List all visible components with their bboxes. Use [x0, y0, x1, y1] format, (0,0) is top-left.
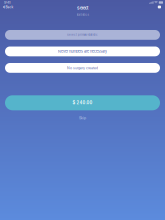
button[interactable]: Info: [156, 4, 163, 10]
staticText: Select primary statistic: [67, 33, 98, 36]
staticText: Select: [77, 6, 88, 10]
staticText: 9:41: [4, 0, 11, 5]
staticText: statistics: [76, 13, 88, 16]
button[interactable]: Never numbers are necessary: [5, 46, 160, 56]
button[interactable]: Select primary statistic: [5, 30, 160, 40]
staticText: Back: [5, 5, 13, 9]
staticText: $ 240.00: [72, 100, 92, 105]
button[interactable]: Skip: [77, 114, 87, 121]
staticText: No surgery created: [67, 66, 98, 70]
staticText: Skip: [79, 116, 86, 120]
button[interactable]: No surgery created: [5, 63, 160, 73]
button[interactable]: $ 240.00: [5, 95, 160, 110]
staticText: Never numbers are necessary: [58, 49, 107, 54]
button[interactable]: Back: [2, 3, 15, 10]
